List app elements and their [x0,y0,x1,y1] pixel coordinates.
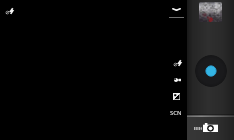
button[interactable]: Flash off [1,2,18,19]
button[interactable]: Photo mode [201,120,220,135]
staticText: SCN [170,109,182,117]
button[interactable]: Exposure [169,89,184,103]
button[interactable]: Shutter [195,55,227,87]
button[interactable]: White balance [169,73,186,87]
button[interactable]: Video mode [191,121,205,136]
button[interactable]: Last photo [199,2,222,22]
button[interactable]: SCN [166,107,186,119]
button[interactable]: Flash mode [169,55,186,71]
button[interactable]: Expand settings [168,2,184,16]
